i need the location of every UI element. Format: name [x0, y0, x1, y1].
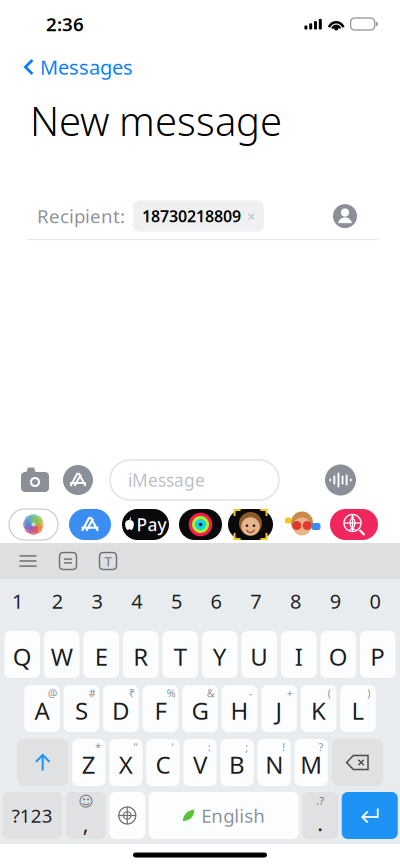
staticText: S: [75, 695, 88, 726]
staticText: 0: [369, 588, 380, 614]
button[interactable]: ?: [295, 739, 328, 786]
button[interactable]: ": [109, 739, 142, 786]
button[interactable]: Memoji: [228, 509, 273, 540]
button[interactable]: iMessage: [110, 460, 279, 500]
button[interactable]: 4: [117, 589, 157, 613]
button[interactable]: Space, English: [149, 792, 299, 839]
staticText: 3: [91, 588, 102, 614]
button[interactable]: [281, 631, 316, 678]
staticText: ": [133, 740, 137, 754]
button[interactable]: [123, 631, 158, 678]
staticText: ;: [245, 740, 248, 754]
button[interactable]: [4, 631, 40, 678]
button[interactable]: Record audio: [325, 464, 356, 495]
staticText: 5: [171, 588, 182, 614]
staticText: 2:36: [46, 12, 84, 36]
button[interactable]: [162, 631, 198, 678]
button[interactable]: [83, 631, 119, 678]
staticText: ×: [247, 206, 255, 226]
button[interactable]: 18730218809: [133, 200, 264, 232]
button[interactable]: 2: [37, 589, 77, 613]
staticText: .?: [316, 794, 324, 808]
button[interactable]: Camera: [15, 460, 55, 500]
button[interactable]: Apps: [59, 460, 97, 500]
button[interactable]: -: [222, 685, 257, 732]
button[interactable]: #: [64, 685, 99, 732]
button[interactable]: Emoji and comma: [66, 792, 106, 839]
staticText: Recipient:: [37, 204, 125, 228]
staticText: Y: [213, 641, 227, 672]
button[interactable]: ): [340, 685, 376, 732]
button[interactable]: :: [183, 739, 217, 786]
staticText: -: [249, 686, 252, 700]
button[interactable]: ': [146, 739, 179, 786]
staticText: #: [89, 686, 96, 700]
button[interactable]: (: [301, 685, 336, 732]
button[interactable]: 6: [196, 589, 236, 613]
staticText: 18730218809: [142, 205, 241, 227]
staticText: *: [95, 740, 101, 754]
button[interactable]: [44, 631, 79, 678]
staticText: Messages: [40, 54, 133, 80]
staticText: :: [208, 740, 211, 754]
button[interactable]: +: [261, 685, 297, 732]
button[interactable]: @: [24, 685, 60, 732]
button[interactable]: App Store: [69, 509, 111, 540]
button[interactable]: 9: [315, 589, 355, 613]
button[interactable]: Backspace: [332, 739, 383, 786]
staticText: H: [230, 695, 248, 726]
button[interactable]: Stickers: [280, 509, 324, 540]
button[interactable]: [320, 631, 356, 678]
button[interactable]: Search: [330, 509, 378, 540]
staticText: 2: [52, 588, 63, 614]
staticText: M: [300, 749, 322, 780]
button[interactable]: &: [182, 685, 218, 732]
button[interactable]: 3: [77, 589, 117, 613]
button[interactable]: Period: [302, 792, 338, 839]
button[interactable]: ₹: [103, 685, 139, 732]
staticText: X: [119, 749, 133, 780]
staticText: New message: [30, 94, 282, 147]
staticText: T: [104, 552, 111, 570]
button[interactable]: Return: [342, 792, 398, 839]
staticText: E: [95, 641, 108, 672]
staticText: %: [167, 686, 176, 700]
button[interactable]: Messages: [0, 49, 133, 85]
button[interactable]: Add contact: [326, 197, 364, 235]
button[interactable]: [241, 631, 277, 678]
button[interactable]: 8: [276, 589, 315, 613]
button[interactable]: Text editing: [92, 547, 124, 575]
button[interactable]: Fitness: [179, 509, 222, 540]
staticText: English: [201, 803, 265, 828]
staticText: 9: [330, 588, 341, 614]
button[interactable]: Menu: [12, 547, 44, 575]
button[interactable]: Apple Pay: [122, 509, 169, 540]
staticText: 4: [131, 588, 142, 614]
staticText: D: [112, 695, 130, 726]
staticText: A: [34, 695, 49, 726]
staticText: T: [174, 641, 187, 672]
staticText: @: [48, 686, 58, 700]
button[interactable]: ;: [220, 739, 254, 786]
staticText: iMessage: [128, 468, 205, 491]
staticText: W: [51, 641, 73, 672]
button[interactable]: Switch keyboard: [109, 792, 145, 839]
button[interactable]: 5: [157, 589, 196, 613]
button[interactable]: Clipboard: [52, 547, 84, 575]
staticText: V: [193, 749, 207, 780]
staticText: !: [282, 740, 285, 754]
staticText: .: [317, 809, 323, 837]
button[interactable]: !: [258, 739, 291, 786]
button[interactable]: 0: [355, 589, 395, 613]
button[interactable]: Photos: [9, 509, 58, 540]
button[interactable]: 1: [0, 589, 37, 613]
button[interactable]: [202, 631, 237, 678]
button[interactable]: [360, 631, 395, 678]
staticText: I: [295, 641, 303, 672]
button[interactable]: 7: [236, 589, 276, 613]
staticText: ?: [318, 740, 323, 754]
button[interactable]: Numbers and symbols: [2, 792, 62, 839]
button[interactable]: *: [72, 739, 105, 786]
button[interactable]: Shift: [17, 739, 68, 786]
button[interactable]: %: [143, 685, 178, 732]
